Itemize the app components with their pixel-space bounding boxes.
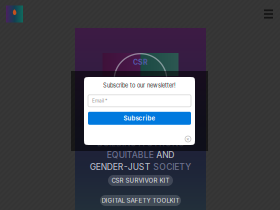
staticText: Subscribe to our newsletter! <box>103 82 176 89</box>
staticText: AND <box>156 150 174 160</box>
staticText: Subscribe <box>123 115 155 122</box>
button[interactable]: Subscribe <box>88 112 191 125</box>
staticText: BUILDING <box>97 138 136 148</box>
staticText: DIGITAL SAFETY TOOLKIT <box>101 197 179 204</box>
staticText: CSR SURVIVOR KIT <box>111 177 169 184</box>
staticText: A <box>138 138 144 148</box>
staticText: CSR <box>133 58 148 66</box>
button[interactable]: Close <box>184 135 192 143</box>
button[interactable]: Home <box>6 5 23 22</box>
staticText: GENDER-JUST <box>90 162 151 172</box>
button[interactable]: DIGITAL SAFETY TOOLKIT <box>100 195 181 206</box>
staticText: × <box>186 136 190 142</box>
staticText: SOCIETY <box>153 162 191 172</box>
button[interactable]: CSR SURVIVOR KIT <box>108 175 173 186</box>
staticText: Email * <box>92 98 107 104</box>
staticText: EQUITABLE <box>107 150 154 160</box>
staticText: STRONG <box>147 138 184 148</box>
button[interactable]: Open menu <box>262 6 275 21</box>
